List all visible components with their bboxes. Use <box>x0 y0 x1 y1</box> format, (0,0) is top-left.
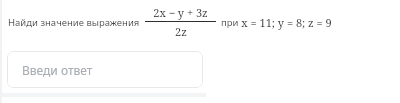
staticText: Введи ответ <box>22 62 93 78</box>
staticText: 2z <box>175 24 187 39</box>
staticText: x = 11; y = 8; z = 9 <box>241 15 332 30</box>
staticText: при <box>221 16 241 29</box>
staticText: 2x − y + 3z <box>153 5 208 20</box>
button[interactable]: Введи ответ <box>7 51 203 88</box>
staticText: Найди значение выражения <box>8 16 140 29</box>
